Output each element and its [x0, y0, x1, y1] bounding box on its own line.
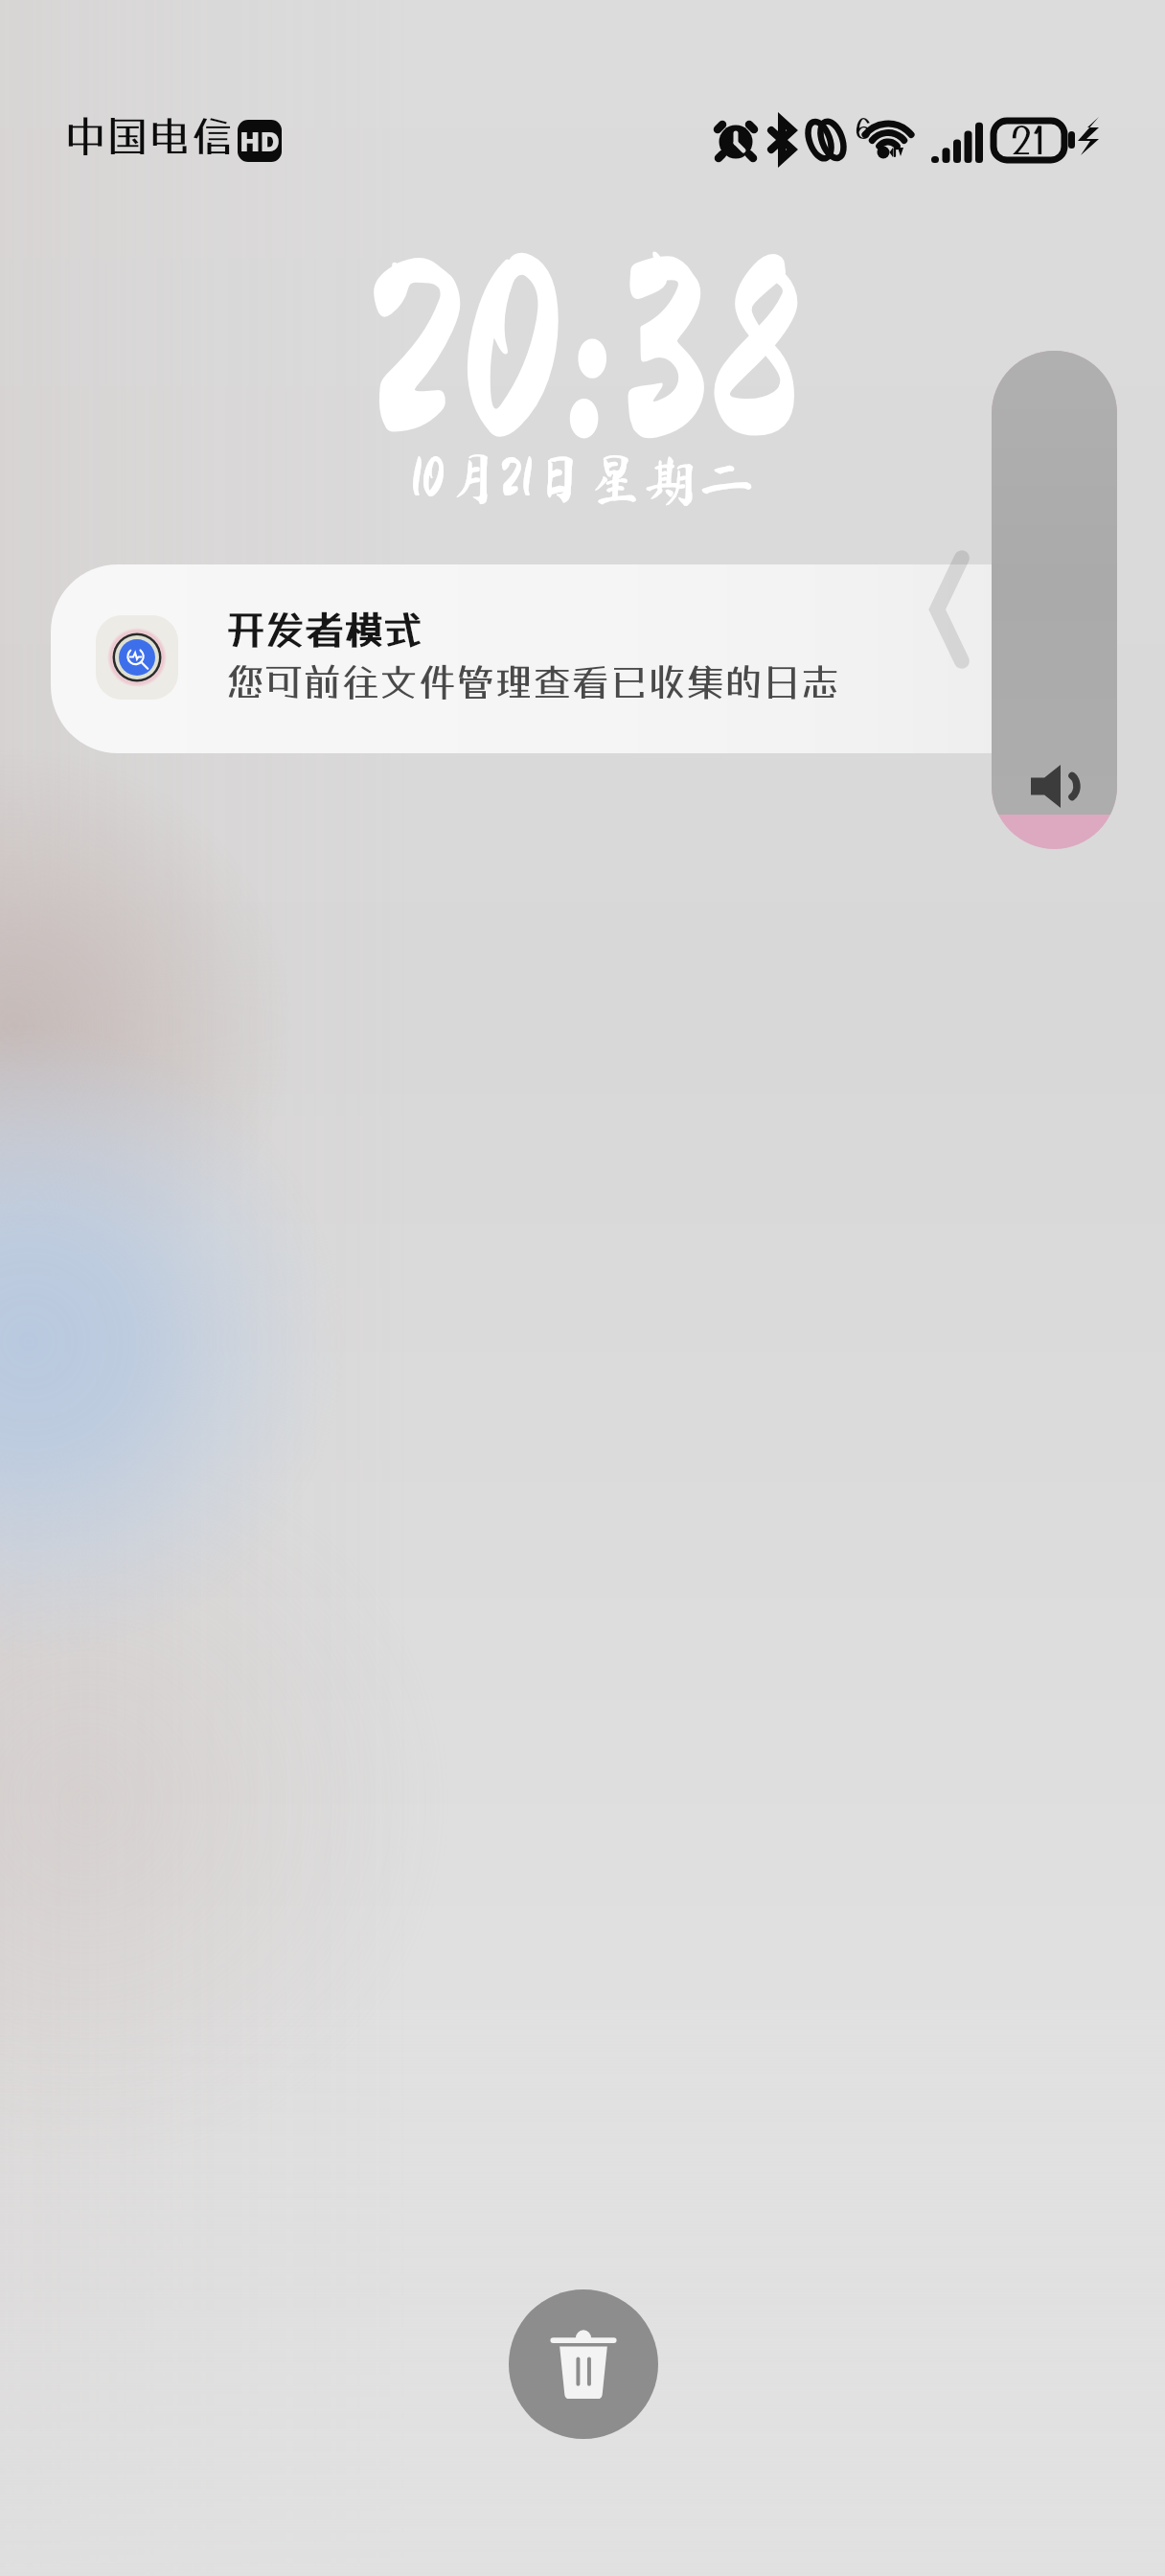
staticText: 您可前往文件管理查看已收集的日志 [226, 659, 839, 704]
button[interactable]: Volume [992, 351, 1117, 849]
button[interactable]: 开发者模式 [51, 564, 1038, 753]
staticText: 开发者模式 [226, 607, 423, 653]
button[interactable]: Clear all notifications [509, 2289, 658, 2439]
staticText: HD [240, 123, 281, 159]
staticText: 中国电信 [64, 111, 233, 161]
staticText: 10月21日星期二 [410, 450, 755, 506]
staticText: 20:38 [364, 228, 802, 479]
staticText: 6 [855, 111, 872, 145]
button[interactable]: Clock and date widget [357, 240, 808, 517]
staticText: 21 [1011, 117, 1047, 162]
button[interactable]: Collapse notification [927, 548, 971, 671]
